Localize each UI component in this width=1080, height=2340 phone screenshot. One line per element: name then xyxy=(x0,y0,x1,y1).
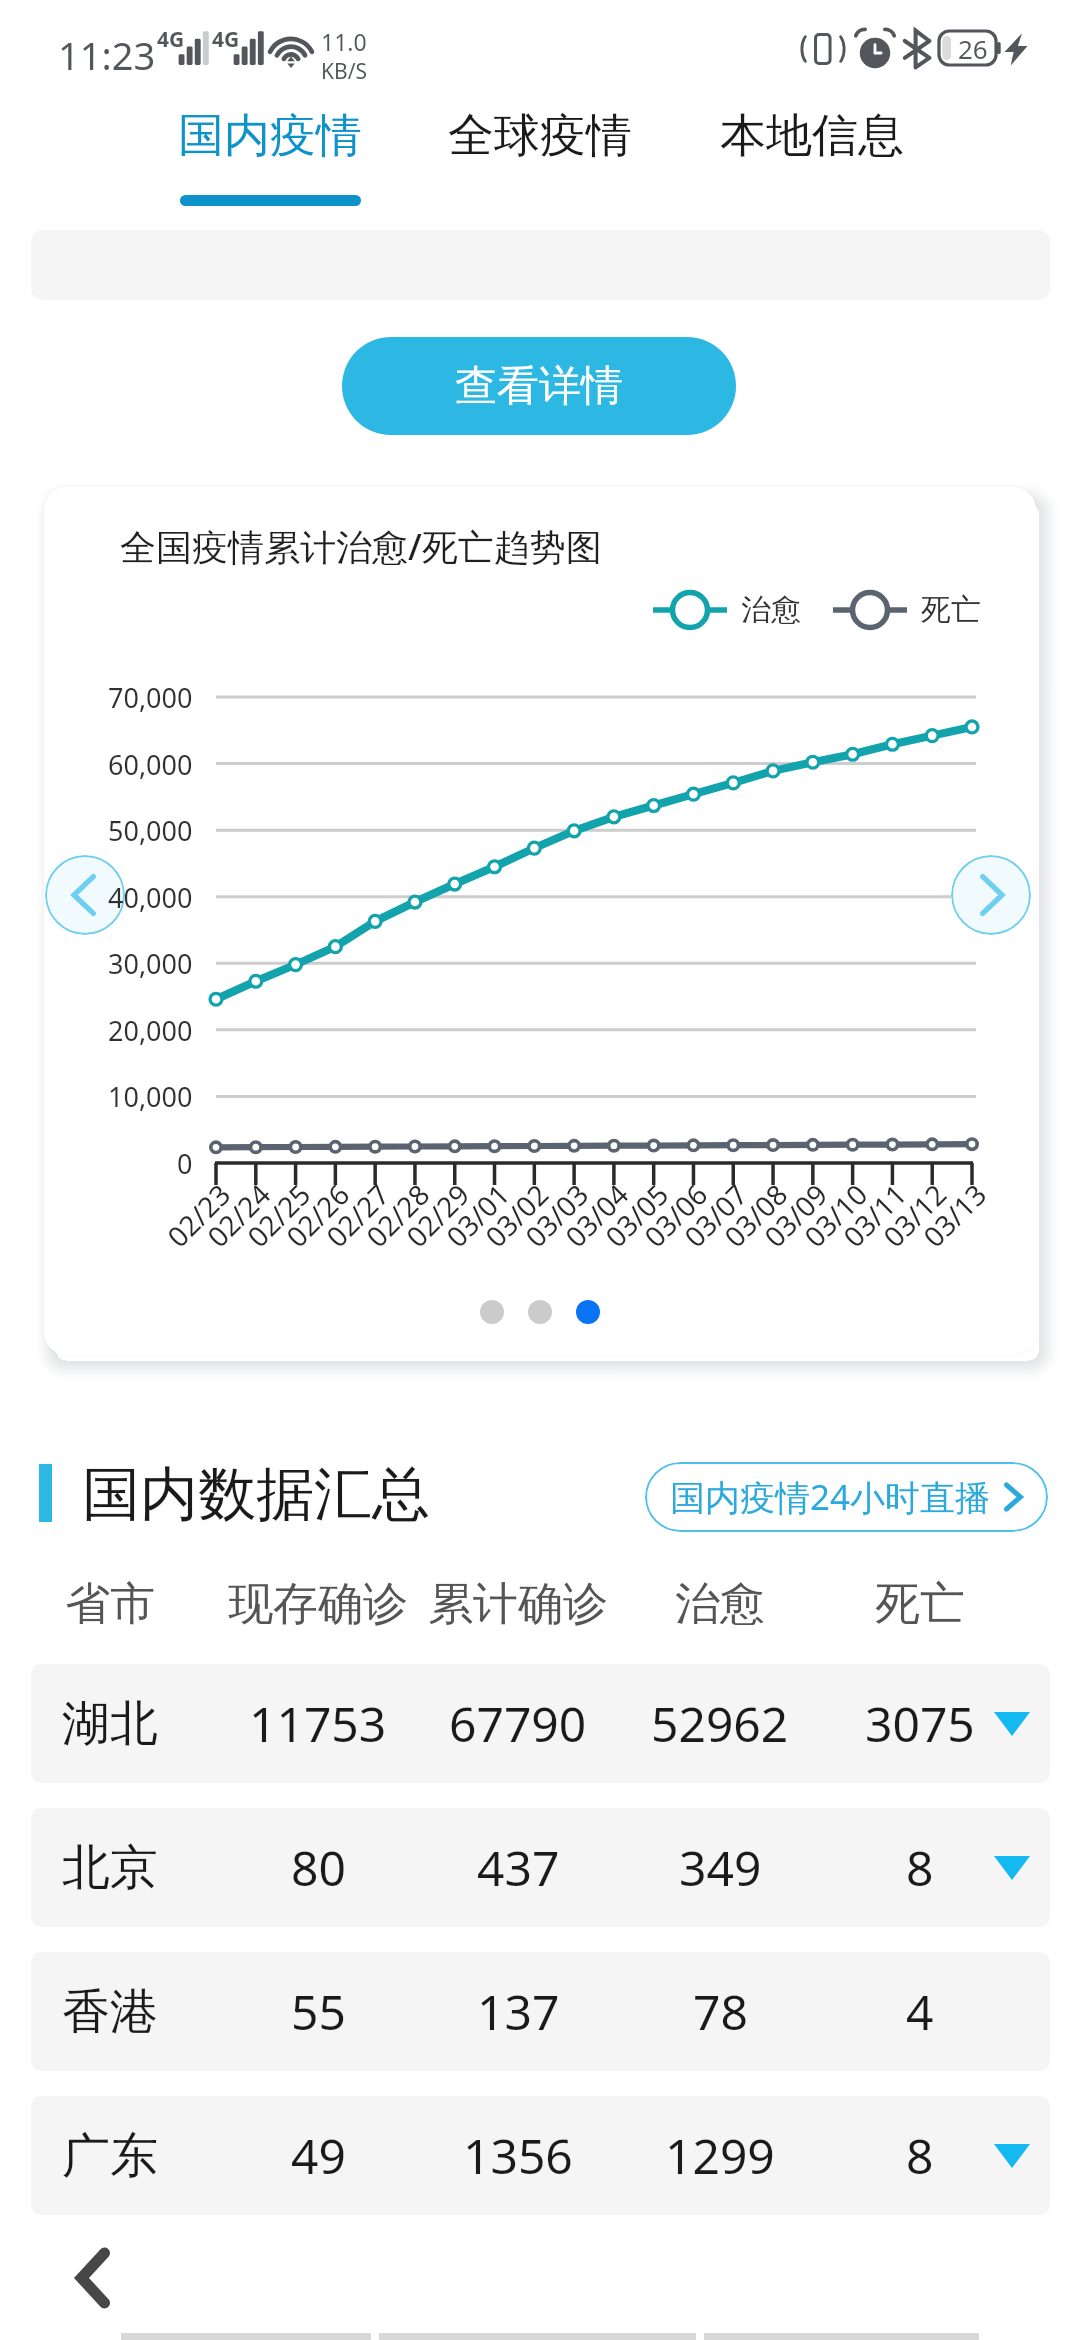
button[interactable]: 全球疫情 xyxy=(412,107,668,206)
staticText: 03/02 xyxy=(476,1175,556,1255)
staticText: 02/25 xyxy=(238,1175,318,1255)
staticText: 湖北 xyxy=(62,1694,158,1754)
staticText: 11.0 xyxy=(321,26,367,57)
staticText: 03/12 xyxy=(874,1175,954,1255)
staticText: 78 xyxy=(693,1979,748,2044)
staticText: 全国疫情累计治愈/死亡趋势图 xyxy=(120,522,602,571)
staticText: 437 xyxy=(477,1835,560,1900)
staticText: 03/11 xyxy=(834,1175,914,1255)
staticText: 4G xyxy=(212,25,240,54)
staticText: 治愈 xyxy=(741,591,801,629)
staticText: 10,000 xyxy=(108,1078,193,1115)
staticText: 40,000 xyxy=(108,879,193,916)
staticText: 死亡 xyxy=(921,591,981,629)
button[interactable]: Previous xyxy=(45,855,125,935)
staticText: 60,000 xyxy=(108,746,193,783)
staticText: 查看详情 xyxy=(455,360,623,413)
staticText: 死亡 xyxy=(875,1576,965,1633)
staticText: 03/09 xyxy=(755,1175,835,1255)
staticText: 03/04 xyxy=(556,1175,636,1255)
staticText: 治愈 xyxy=(675,1576,765,1633)
staticText: 国内疫情24小时直播 xyxy=(670,1473,991,1521)
staticText: 8 xyxy=(906,2123,934,2188)
staticText: 137 xyxy=(477,1979,560,2044)
staticText: 累计确诊 xyxy=(428,1576,608,1633)
staticText: 02/23 xyxy=(158,1175,238,1255)
staticText: 现存确诊 xyxy=(228,1576,408,1633)
staticText: 1356 xyxy=(463,2123,573,2188)
staticText: 香港 xyxy=(62,1982,158,2042)
staticText: 349 xyxy=(679,1835,762,1900)
staticText: 52962 xyxy=(651,1691,789,1756)
staticText: 本地信息 xyxy=(720,107,904,165)
button[interactable]: 查看详情 xyxy=(342,337,736,435)
staticText: 03/05 xyxy=(596,1175,676,1255)
staticText: 49 xyxy=(291,2123,346,2188)
staticText: 02/28 xyxy=(357,1175,437,1255)
staticText: 02/26 xyxy=(277,1175,357,1255)
button[interactable]: 广东 xyxy=(31,2096,1050,2215)
staticText: 0 xyxy=(177,1145,193,1182)
staticText: 50,000 xyxy=(108,812,193,849)
button[interactable]: 香港 xyxy=(31,1952,1050,2071)
button[interactable]: 北京 xyxy=(31,1808,1050,1927)
staticText: 省市 xyxy=(65,1576,155,1633)
staticText: 03/13 xyxy=(914,1175,994,1255)
staticText: 03/03 xyxy=(516,1175,596,1255)
staticText: 11:23 xyxy=(58,29,156,81)
staticText: 国内数据汇总 xyxy=(82,1458,430,1531)
staticText: 20,000 xyxy=(108,1012,193,1049)
staticText: 70,000 xyxy=(108,679,193,716)
button[interactable]: Next xyxy=(951,855,1031,935)
staticText: 3075 xyxy=(865,1691,975,1756)
button[interactable]: 国内疫情24小时直播 xyxy=(645,1462,1048,1532)
staticText: 8 xyxy=(906,1835,934,1900)
staticText: KB/S xyxy=(321,57,367,86)
staticText: 30,000 xyxy=(108,945,193,982)
staticText: 4G xyxy=(157,25,185,54)
staticText: 国内疫情 xyxy=(178,107,362,165)
button[interactable]: 本地信息 xyxy=(684,107,940,206)
staticText: 03/07 xyxy=(675,1175,755,1255)
staticText: 67790 xyxy=(449,1691,587,1756)
staticText: 02/27 xyxy=(317,1175,397,1255)
staticText: 4 xyxy=(906,1979,934,2044)
staticText: 55 xyxy=(291,1979,346,2044)
staticText: 03/10 xyxy=(795,1175,875,1255)
staticText: 03/06 xyxy=(635,1175,715,1255)
staticText: 02/24 xyxy=(198,1175,278,1255)
staticText: 03/08 xyxy=(715,1175,795,1255)
staticText: 26 xyxy=(958,31,988,65)
staticText: 02/29 xyxy=(397,1175,477,1255)
staticText: 广东 xyxy=(62,2126,158,2186)
staticText: 11753 xyxy=(249,1691,387,1756)
staticText: 全球疫情 xyxy=(448,107,632,165)
button[interactable]: 国内疫情 xyxy=(142,107,398,206)
staticText: 北京 xyxy=(62,1838,158,1898)
button[interactable]: 湖北 xyxy=(31,1664,1050,1783)
staticText: 1299 xyxy=(665,2123,775,2188)
staticText: 80 xyxy=(291,1835,346,1900)
staticText: 03/01 xyxy=(437,1175,517,1255)
button[interactable]: Back xyxy=(55,2240,131,2316)
